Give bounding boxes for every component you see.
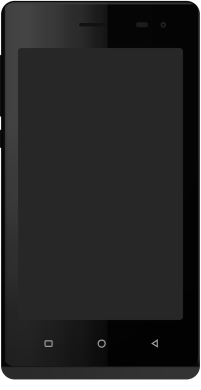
button[interactable]: Navigation bar — [0, 0, 201, 390]
